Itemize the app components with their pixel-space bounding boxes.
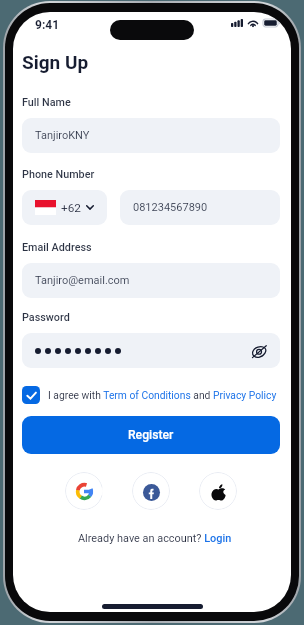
staticText: 081234567890 <box>133 201 208 214</box>
staticText: Email Address <box>22 241 92 254</box>
button[interactable]: Sign in with Google <box>65 472 103 510</box>
button[interactable]: Tanjiro@email.com <box>22 263 280 298</box>
button[interactable]: Select country code <box>22 190 107 225</box>
button[interactable]: Register <box>22 416 280 454</box>
button[interactable]: Sign in with Apple <box>199 472 237 510</box>
staticText: Tanjiro@email.com <box>35 274 130 287</box>
staticText: Sign Up <box>22 51 89 73</box>
staticText: 9:41 <box>35 18 60 32</box>
button[interactable]: Sign in with Facebook <box>132 472 170 510</box>
button[interactable]: TanjiroKNY <box>22 118 280 153</box>
staticText: Already have an account? Login <box>78 532 232 545</box>
button[interactable]: Show password <box>22 333 280 368</box>
staticText: Password <box>22 311 70 324</box>
button[interactable]: Show password <box>250 342 268 360</box>
staticText: Phone Number <box>22 168 95 181</box>
staticText: Full Name <box>22 96 71 109</box>
button[interactable]: 081234567890 <box>120 190 280 225</box>
staticText: I agree with Term of Conditions and Priv… <box>48 389 277 401</box>
staticText: Register <box>128 428 174 442</box>
staticText: TanjiroKNY <box>35 129 90 142</box>
staticText: +62 <box>61 201 81 215</box>
button[interactable]: Agree to terms <box>22 386 40 404</box>
